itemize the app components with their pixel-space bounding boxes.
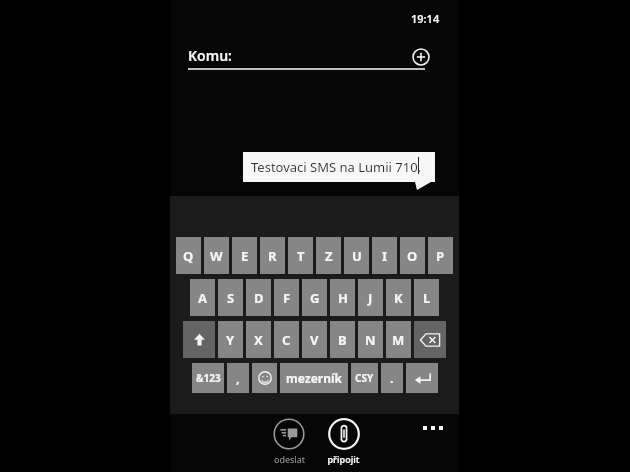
staticText: D bbox=[254, 289, 264, 307]
staticText: W bbox=[210, 247, 223, 265]
button[interactable]: U bbox=[344, 237, 369, 274]
button[interactable]: K bbox=[386, 279, 411, 316]
button[interactable]: D bbox=[246, 279, 271, 316]
staticText: X bbox=[254, 331, 263, 349]
button[interactable]: H bbox=[330, 279, 355, 316]
staticText: J bbox=[368, 289, 373, 307]
staticText: &123 bbox=[196, 371, 221, 385]
staticText: Komu: bbox=[188, 46, 232, 65]
staticText: odeslat bbox=[274, 453, 305, 465]
button[interactable]: C bbox=[274, 321, 299, 358]
staticText: 19:14 bbox=[411, 11, 440, 26]
button[interactable]: Add recipient bbox=[408, 44, 434, 70]
staticText: CSY bbox=[355, 371, 374, 385]
staticText: C bbox=[282, 331, 291, 349]
button[interactable]: Emoji bbox=[252, 363, 277, 393]
button[interactable]: N bbox=[358, 321, 383, 358]
button[interactable]: Enter bbox=[406, 363, 438, 393]
staticText: F bbox=[283, 289, 291, 307]
button[interactable]: E bbox=[232, 237, 257, 274]
button[interactable]: More options bbox=[419, 418, 447, 438]
button[interactable]: J bbox=[358, 279, 383, 316]
staticText: R bbox=[268, 247, 277, 265]
button[interactable]: Q bbox=[176, 237, 201, 274]
button[interactable]: V bbox=[302, 321, 327, 358]
button[interactable]: L bbox=[414, 279, 439, 316]
button[interactable]: G bbox=[302, 279, 327, 316]
staticText: Y bbox=[226, 331, 235, 349]
staticText: mezerník bbox=[286, 370, 343, 386]
staticText: L bbox=[423, 289, 431, 307]
button[interactable]: připojit bbox=[327, 418, 360, 465]
staticText: , bbox=[236, 369, 240, 387]
button[interactable]: R bbox=[260, 237, 285, 274]
staticText: B bbox=[338, 331, 347, 349]
staticText: N bbox=[365, 331, 376, 349]
button[interactable]: CSY bbox=[351, 363, 378, 393]
button[interactable]: . bbox=[381, 363, 403, 393]
staticText: připojit bbox=[327, 453, 360, 465]
staticText: V bbox=[310, 331, 319, 349]
button[interactable]: S bbox=[218, 279, 243, 316]
staticText: Z bbox=[325, 247, 333, 265]
staticText: U bbox=[352, 247, 362, 265]
staticText: K bbox=[394, 289, 403, 307]
button[interactable]: , bbox=[227, 363, 249, 393]
button[interactable]: A bbox=[190, 279, 215, 316]
staticText: E bbox=[241, 247, 249, 265]
button[interactable]: &123 bbox=[192, 363, 224, 393]
button[interactable]: Komu: bbox=[170, 38, 459, 72]
button[interactable]: X bbox=[246, 321, 271, 358]
staticText: M bbox=[392, 331, 405, 349]
button[interactable]: mezerník bbox=[280, 363, 348, 393]
staticText: I bbox=[382, 247, 388, 265]
button[interactable]: odeslat bbox=[273, 418, 305, 465]
button[interactable]: F bbox=[274, 279, 299, 316]
button[interactable]: W bbox=[204, 237, 229, 274]
button[interactable]: P bbox=[428, 237, 453, 274]
staticText: . bbox=[390, 369, 394, 387]
button[interactable]: O bbox=[400, 237, 425, 274]
button[interactable]: Z bbox=[316, 237, 341, 274]
staticText: O bbox=[407, 247, 418, 265]
staticText: Q bbox=[183, 247, 194, 265]
staticText: G bbox=[310, 289, 320, 307]
button[interactable]: I bbox=[372, 237, 397, 274]
staticText: T bbox=[297, 247, 305, 265]
button[interactable]: Backspace bbox=[414, 321, 446, 358]
button[interactable]: B bbox=[330, 321, 355, 358]
button[interactable]: T bbox=[288, 237, 313, 274]
button[interactable]: Y bbox=[218, 321, 243, 358]
button[interactable]: Shift bbox=[183, 321, 215, 358]
staticText: Testovaci SMS na Lumii 710. bbox=[251, 158, 422, 176]
staticText: A bbox=[198, 289, 207, 307]
staticText: S bbox=[227, 289, 235, 307]
staticText: P bbox=[436, 247, 445, 265]
staticText: H bbox=[338, 289, 348, 307]
button[interactable]: M bbox=[386, 321, 411, 358]
